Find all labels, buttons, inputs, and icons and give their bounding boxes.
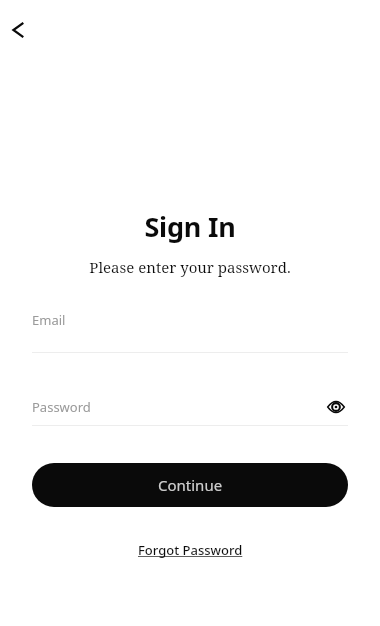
button[interactable]: Show password <box>324 396 348 418</box>
staticText: Email <box>32 311 66 329</box>
staticText: Continue <box>158 475 223 495</box>
button[interactable]: Back <box>4 14 36 46</box>
staticText: Password <box>32 398 91 416</box>
staticText: Sign In <box>0 208 380 245</box>
button[interactable]: Email <box>32 311 348 353</box>
staticText: Please enter your password. <box>0 257 380 277</box>
staticText: Forgot Password <box>138 541 243 559</box>
button[interactable]: Continue <box>32 463 348 507</box>
button[interactable]: Password <box>32 398 324 416</box>
button[interactable]: Forgot Password <box>130 538 251 562</box>
